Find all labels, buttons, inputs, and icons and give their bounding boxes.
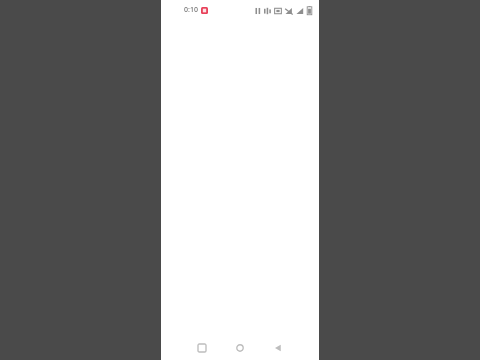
button[interactable]: Back bbox=[267, 337, 289, 359]
button[interactable]: Recent apps bbox=[191, 337, 213, 359]
button[interactable]: Home bbox=[229, 337, 251, 359]
staticText: 0:10 bbox=[184, 5, 198, 15]
